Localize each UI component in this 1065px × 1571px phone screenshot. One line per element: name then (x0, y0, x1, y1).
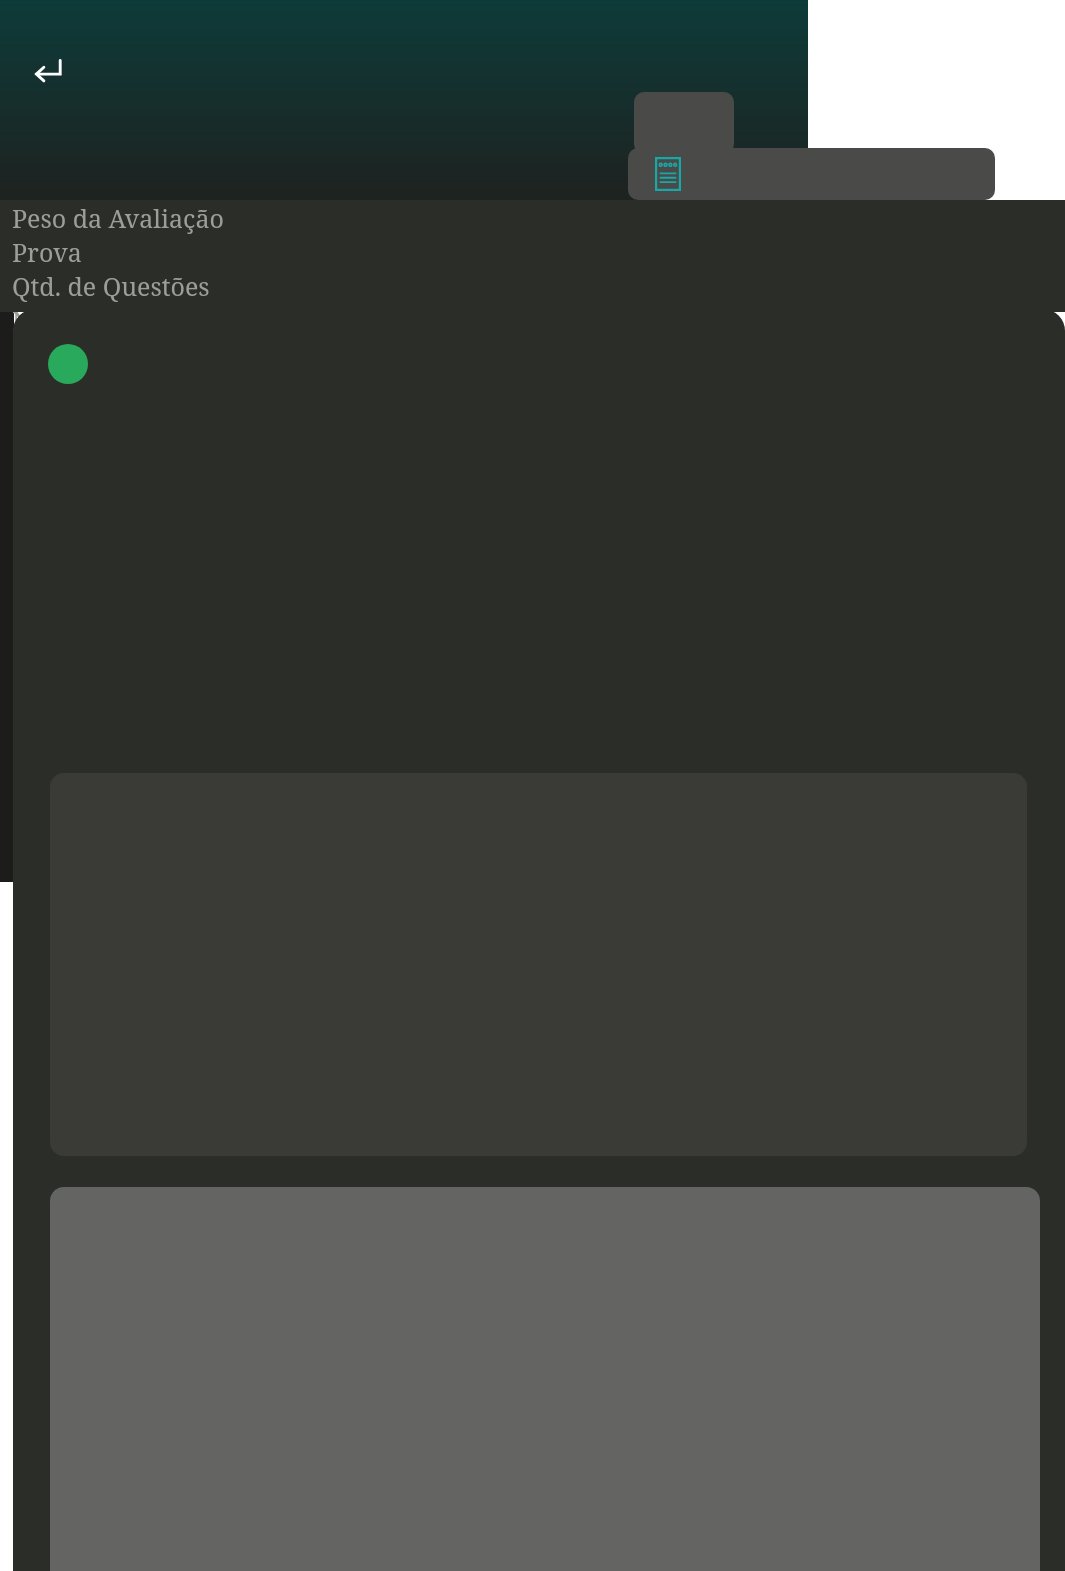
button[interactable]: Aba (634, 92, 734, 154)
button[interactable]: Voltar (22, 42, 78, 98)
staticText: Nota (12, 303, 69, 337)
staticText: Qtd. de Questões (12, 269, 210, 303)
button[interactable]: Status (48, 344, 88, 384)
button[interactable]: Prova (628, 148, 995, 200)
staticText: Prova (12, 235, 82, 269)
staticText: Peso da Avaliação (12, 201, 224, 235)
